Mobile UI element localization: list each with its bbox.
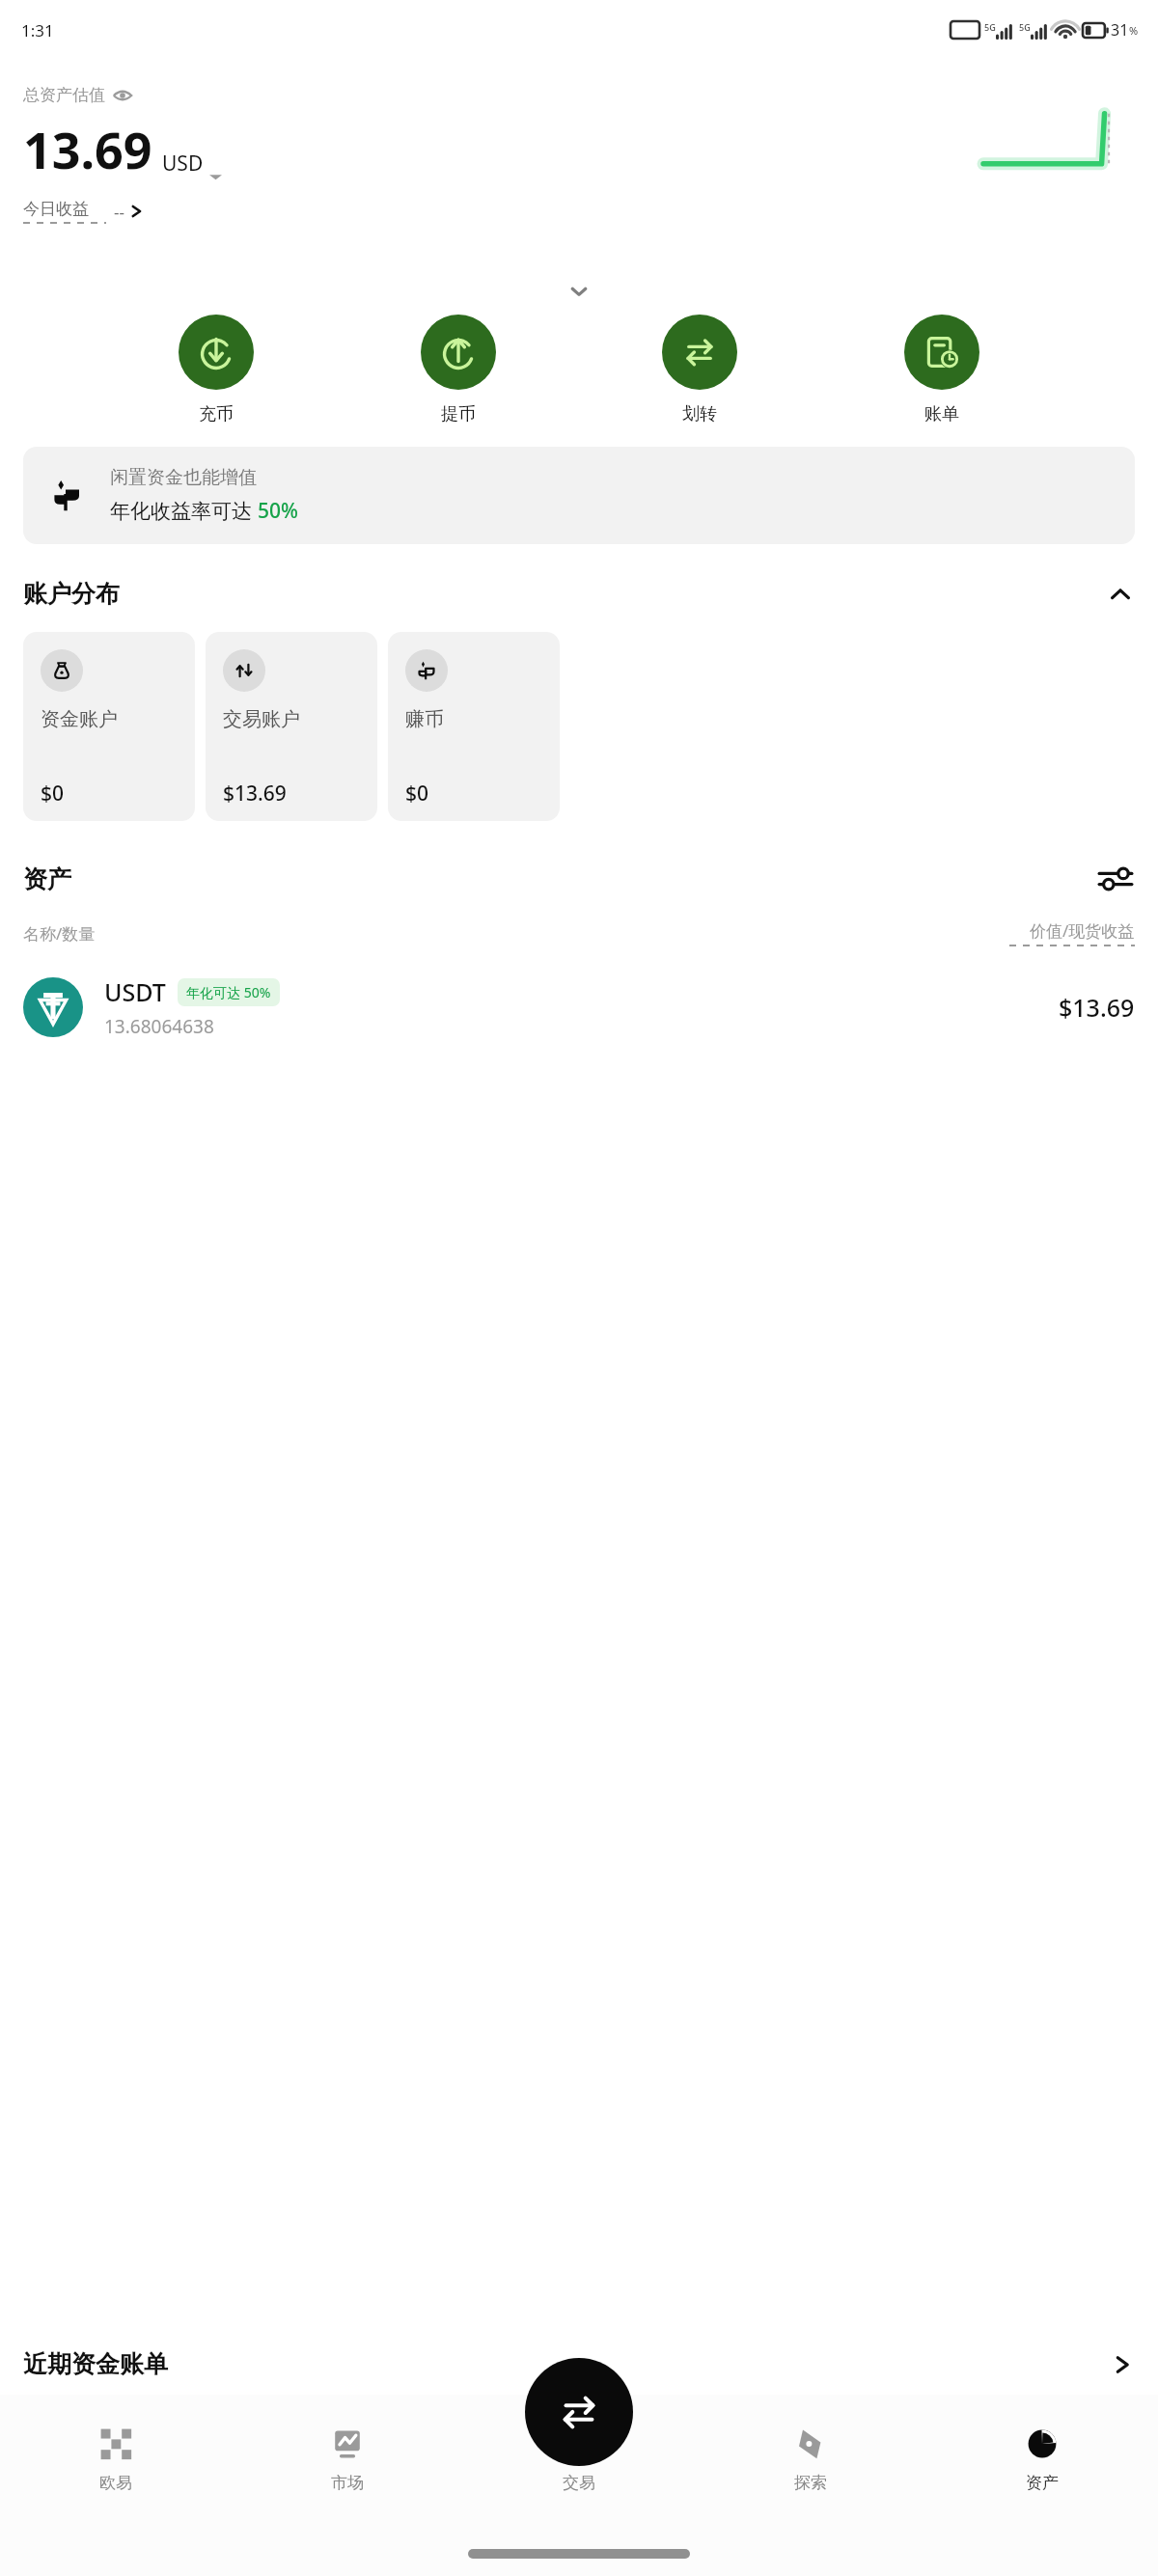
button[interactable]: 市场 — [232, 2395, 463, 2520]
button[interactable]: 闲置资金也能增值 — [23, 447, 1135, 544]
staticText: 总资产估值 — [23, 85, 105, 105]
staticText: 提币 — [441, 403, 476, 425]
button[interactable]: 账户分布 — [23, 579, 1135, 609]
button[interactable]: 交易账户 — [206, 632, 377, 821]
staticText: USD — [162, 150, 204, 178]
staticText: 1:31 — [21, 19, 54, 41]
button[interactable]: 充币 — [173, 315, 260, 425]
staticText: 今日收益 — [23, 199, 89, 219]
button[interactable]: 资产 — [926, 2395, 1158, 2520]
staticText: 13.69 — [23, 115, 152, 183]
staticText: 资金账户 — [41, 707, 118, 731]
staticText: 赚币 — [405, 707, 444, 731]
staticText: 13.68064638 — [104, 1014, 214, 1039]
staticText: 31 — [1111, 19, 1129, 41]
staticText: 账单 — [924, 403, 959, 425]
staticText: 欧易 — [99, 2473, 132, 2493]
button[interactable]: Expand — [563, 275, 595, 308]
staticText: -- — [114, 201, 124, 223]
button[interactable]: 今日收益 — [23, 199, 144, 224]
staticText: $0 — [405, 780, 429, 808]
staticText: 5G — [1019, 21, 1031, 33]
staticText: 近期资金账单 — [23, 2349, 168, 2379]
staticText: 5G — [984, 21, 996, 33]
staticText: 年化可达 50% — [186, 983, 271, 1001]
staticText: 闲置资金也能增值 — [110, 466, 257, 489]
button[interactable]: 探索 — [695, 2395, 926, 2520]
staticText: 探索 — [794, 2473, 827, 2493]
button[interactable]: 交易 — [463, 2395, 695, 2520]
staticText: 市场 — [331, 2473, 364, 2493]
staticText: 交易账户 — [223, 707, 300, 731]
staticText: $0 — [41, 780, 65, 808]
staticText: $13.69 — [1059, 991, 1135, 1024]
staticText: 划转 — [682, 403, 717, 425]
button[interactable]: 划转 — [656, 315, 743, 425]
staticText: 资产 — [23, 864, 71, 894]
button[interactable]: 提币 — [415, 315, 502, 425]
staticText: % — [1129, 23, 1139, 38]
staticText: USDT — [104, 975, 166, 1008]
button[interactable]: Toggle balance visibility — [113, 86, 132, 105]
other: Collapse — [1106, 580, 1135, 609]
button[interactable]: 近期资金账单 — [0, 2349, 1158, 2379]
staticText: 价值/现货收益 — [1030, 919, 1135, 942]
staticText: $13.69 — [223, 780, 287, 808]
staticText: 充币 — [199, 403, 234, 425]
staticText: 名称/数量 — [23, 922, 96, 945]
button[interactable]: 欧易 — [0, 2395, 232, 2520]
button[interactable]: 账单 — [898, 315, 985, 425]
staticText: 年化收益率可达 — [110, 497, 258, 525]
button[interactable]: Filter — [1096, 860, 1135, 898]
staticText: 交易 — [563, 2473, 595, 2493]
button[interactable]: 资金账户 — [23, 632, 195, 821]
staticText: 账户分布 — [23, 579, 120, 609]
button[interactable]: 赚币 — [388, 632, 560, 821]
staticText: 50% — [258, 497, 298, 525]
staticText: 资产 — [1026, 2473, 1059, 2493]
button[interactable]: Trade — [525, 2358, 633, 2466]
button[interactable]: USDT — [0, 966, 1158, 1049]
